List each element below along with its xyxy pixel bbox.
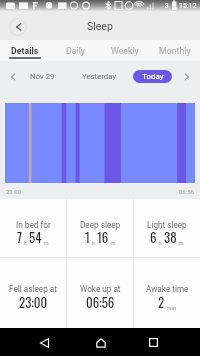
staticText: Fell asleep at bbox=[9, 284, 57, 294]
button[interactable]: Details bbox=[0, 40, 50, 61]
staticText: In bed for bbox=[16, 220, 51, 230]
staticText: 7 bbox=[17, 228, 22, 247]
button[interactable]: Recent apps bbox=[141, 330, 166, 355]
staticText: m bbox=[42, 240, 49, 247]
staticText: 16 bbox=[97, 228, 109, 247]
staticText: 3 bbox=[165, 2, 171, 10]
button[interactable]: Previous day bbox=[6, 70, 20, 84]
staticText: Daily bbox=[66, 46, 85, 56]
button[interactable]: Woke up at bbox=[67, 258, 133, 328]
staticText: Deep sleep bbox=[80, 220, 121, 230]
staticText: m bbox=[177, 240, 184, 247]
staticText: h bbox=[90, 240, 97, 247]
button[interactable]: Fell asleep at bbox=[0, 258, 66, 328]
staticText: 2 bbox=[158, 293, 165, 312]
staticText: Nov 29 bbox=[30, 72, 55, 81]
staticText: 23:00 bbox=[19, 293, 48, 312]
button[interactable]: Back bbox=[32, 330, 57, 355]
button[interactable]: Next day bbox=[180, 70, 194, 84]
staticText: 6 bbox=[150, 228, 157, 247]
button[interactable]: Home bbox=[88, 330, 113, 355]
button[interactable]: Awake time bbox=[134, 258, 200, 328]
staticText: Details bbox=[11, 46, 39, 56]
button[interactable]: Back bbox=[9, 18, 27, 36]
staticText: 06:56 bbox=[86, 293, 115, 312]
staticText: m bbox=[109, 240, 116, 247]
staticText: 38 bbox=[164, 228, 177, 247]
staticText: 15:12 bbox=[179, 2, 197, 10]
button[interactable]: Daily bbox=[50, 40, 100, 61]
button[interactable]: Light sleep bbox=[134, 199, 200, 257]
staticText: Weekly bbox=[111, 46, 139, 56]
staticText: Yesterday bbox=[82, 72, 117, 81]
staticText: Awake time bbox=[146, 284, 189, 294]
staticText: Light sleep bbox=[147, 220, 187, 230]
button[interactable]: Today bbox=[133, 70, 172, 83]
button[interactable]: Weekly bbox=[100, 40, 150, 61]
staticText: 1 bbox=[85, 228, 90, 247]
staticText: Today bbox=[142, 72, 164, 81]
staticText: h bbox=[157, 240, 164, 247]
staticText: Monthly bbox=[159, 46, 191, 56]
button[interactable]: In bed for bbox=[0, 199, 66, 257]
staticText: 06:56 bbox=[179, 188, 194, 195]
staticText: Woke up at bbox=[80, 284, 121, 294]
staticText: Sleep bbox=[87, 20, 113, 32]
button[interactable]: Monthly bbox=[150, 40, 200, 61]
button[interactable]: Deep sleep bbox=[67, 199, 133, 257]
staticText: 54 bbox=[29, 228, 42, 247]
staticText: 23:00 bbox=[6, 188, 21, 195]
staticText: h bbox=[22, 240, 29, 247]
staticText: min bbox=[165, 305, 177, 312]
